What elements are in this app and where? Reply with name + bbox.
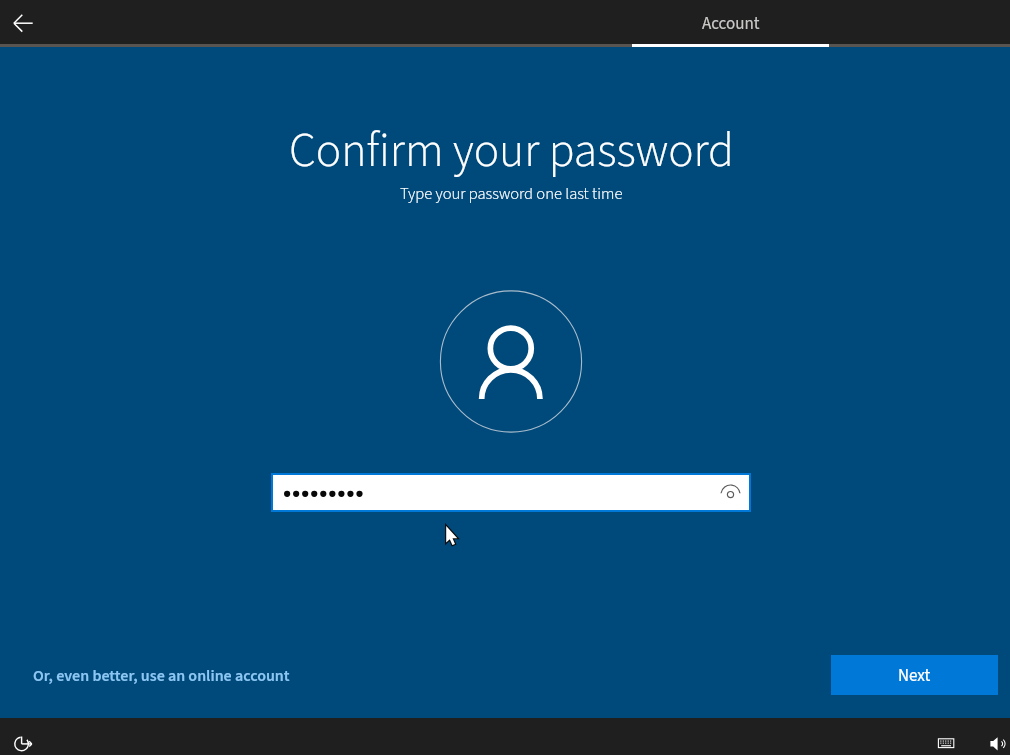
button[interactable]: Volume [984,730,1010,755]
button[interactable]: Touch keyboard [930,730,962,755]
button[interactable]: Show password [273,475,749,510]
staticText: Type your password one last time [400,182,623,205]
staticText: Or, even better, use an online account [33,665,290,688]
button[interactable]: Ease of access [8,730,36,755]
button[interactable]: Show password [713,475,749,510]
staticText: Account [702,12,760,36]
button[interactable]: Back [2,2,44,44]
button[interactable]: Or, even better, use an online account [26,660,316,692]
button[interactable]: Next [831,655,998,695]
staticText: Confirm your password [289,117,734,185]
button[interactable]: Account [632,0,829,48]
staticText: Next [898,664,931,688]
